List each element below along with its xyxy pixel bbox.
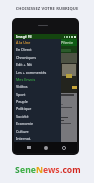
staticText: ews [43,164,60,176]
staticText: À la Une [16,40,31,45]
staticText: Sport [16,92,26,97]
staticText: Chroniques [16,55,36,60]
staticText: ene [20,164,36,176]
staticText: Peuple [16,99,28,104]
button[interactable]: Politique [14,105,61,112]
button[interactable]: Les + commentés [14,69,61,76]
button[interactable]: Peuple [14,98,61,105]
staticText: Economie [16,121,34,126]
button[interactable]: Chroniques [14,54,61,61]
staticText: Mes Envois [16,77,36,82]
staticText: Les + commentés [16,70,47,75]
button[interactable]: Recents [25,144,32,151]
button[interactable]: Edit + Nit [14,61,61,68]
staticText: S [15,164,20,176]
staticText: Société [16,114,29,119]
staticText: CHOISISSEZ VOTRE RUBRIQUE [0,6,94,12]
button[interactable]: Economie [14,120,61,127]
staticText: En Direct [16,47,32,52]
staticText: .com [60,164,81,176]
staticText: Internat. [16,136,32,141]
button[interactable]: En Direct [14,46,61,53]
button[interactable]: À la Une [14,39,61,46]
button[interactable]: Internat. [14,135,61,142]
button[interactable]: Back [60,144,67,151]
button[interactable]: Culture [14,128,61,135]
button[interactable]: Sport [14,91,61,98]
button[interactable]: Mes Envois [14,76,61,83]
button[interactable]: Home [42,144,49,151]
staticText: Edit + Nit [16,62,32,67]
button[interactable]: Société [14,113,61,120]
staticText: Culture [16,129,29,134]
staticText: Imagé Fil [16,34,32,39]
button[interactable]: Vidéos [14,83,61,90]
staticText: N [36,164,43,176]
staticText: Politique [16,106,32,111]
staticText: Pfiente [61,40,73,45]
staticText: Vidéos [16,84,28,89]
